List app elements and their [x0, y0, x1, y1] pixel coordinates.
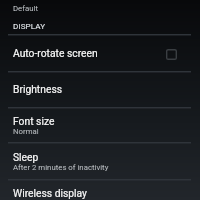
- staticText: Brightness: [13, 83, 63, 95]
- staticText: Sleep: [13, 151, 39, 163]
- staticText: DISPLAY: [13, 21, 46, 30]
- staticText: Default: [13, 4, 38, 13]
- button[interactable]: Auto-rotate screen: [0, 35, 200, 71]
- button[interactable]: Brightness: [0, 72, 200, 107]
- button[interactable]: Sleep: [0, 143, 200, 179]
- staticText: Normal: [13, 127, 39, 136]
- button[interactable]: Font size: [0, 108, 200, 142]
- staticText: After 2 minutes of inactivity: [13, 163, 109, 172]
- staticText: Auto-rotate screen: [13, 47, 98, 59]
- button[interactable]: Auto-rotate screen, off: [166, 49, 177, 60]
- button[interactable]: Wireless display: [0, 180, 200, 200]
- button[interactable]: Default: [0, 0, 200, 16]
- staticText: Wireless display: [13, 187, 87, 199]
- staticText: Font size: [13, 115, 55, 127]
